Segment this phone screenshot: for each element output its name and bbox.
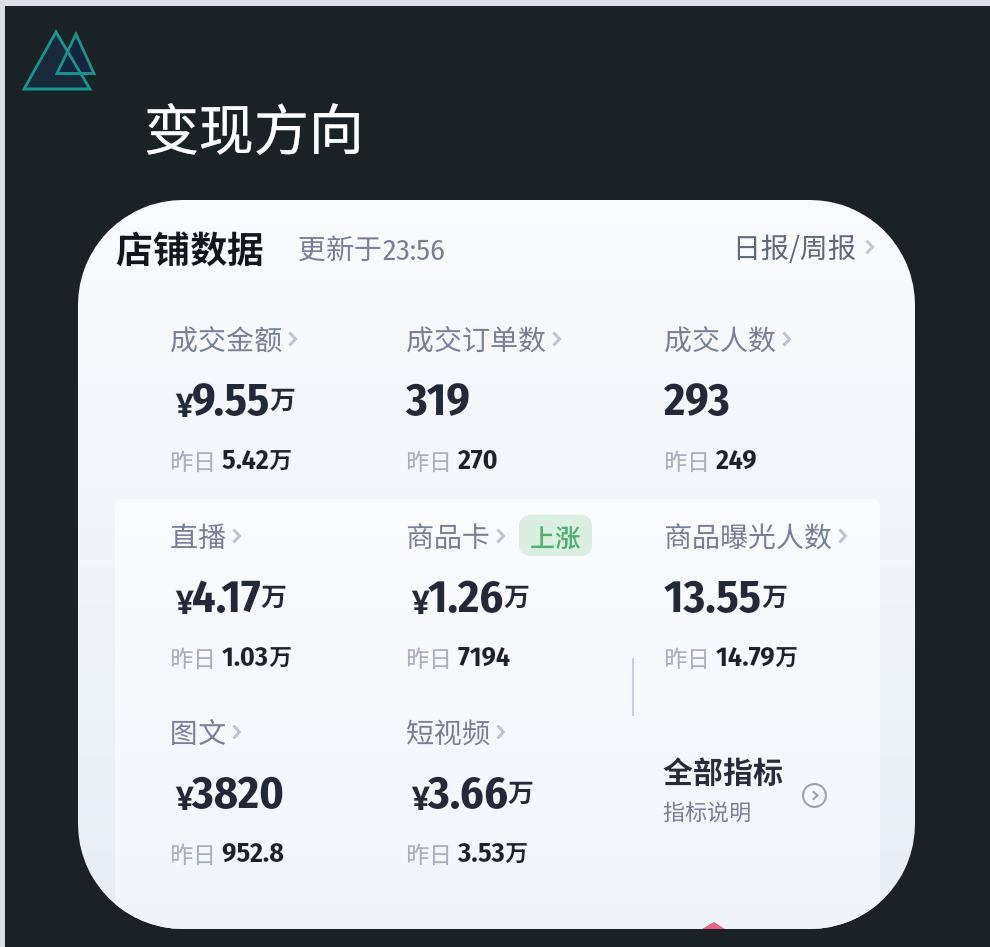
staticText: 短视频	[406, 711, 491, 752]
staticText: 直播	[170, 515, 227, 556]
button[interactable]: 全部指标	[663, 748, 783, 826]
staticText: 3820	[192, 765, 285, 820]
button[interactable]: 全部指标	[802, 783, 827, 808]
staticText: 指标说明	[663, 794, 752, 826]
staticText: 万	[505, 834, 528, 867]
staticText: 3.53	[458, 836, 505, 870]
staticText: 293	[664, 372, 730, 427]
staticText: 成交订单数	[406, 318, 547, 359]
staticText: 4.17	[192, 569, 261, 624]
staticText: 万	[775, 638, 798, 671]
staticText: 万	[504, 576, 531, 614]
staticText: 5.42	[222, 443, 269, 477]
staticText: 昨日	[406, 443, 458, 476]
staticText: 昨日	[170, 443, 222, 476]
button[interactable]: 上涨	[519, 515, 592, 556]
staticText: 14.79	[716, 640, 775, 674]
staticText: 成交人数	[664, 318, 777, 359]
staticText: 商品卡	[406, 515, 491, 556]
staticText: 全部指标	[663, 748, 783, 791]
staticText: 319	[406, 372, 471, 427]
staticText: ¥	[176, 385, 194, 426]
staticText: 249	[716, 443, 757, 477]
staticText: 270	[458, 443, 498, 477]
staticText: 23:56	[383, 232, 445, 268]
staticText: 952.8	[222, 836, 285, 870]
staticText: 商品曝光人数	[664, 515, 833, 556]
staticText: 日报/周报	[733, 226, 856, 267]
staticText: 上涨	[530, 518, 581, 554]
button[interactable]: 短视频	[406, 711, 505, 752]
staticText: 成交金额	[170, 318, 283, 359]
staticText: 万	[269, 441, 292, 474]
staticText: 万	[762, 576, 789, 614]
staticText: 昨日	[406, 640, 458, 673]
staticText: 万	[261, 576, 288, 614]
staticText: ¥	[412, 582, 430, 623]
staticText: 昨日	[170, 640, 222, 673]
staticText: 昨日	[170, 836, 222, 869]
button[interactable]: 成交金额	[170, 318, 297, 359]
staticText: 万	[269, 638, 292, 671]
staticText: 13.55	[664, 569, 762, 624]
staticText: ¥	[176, 582, 194, 623]
staticText: 变现方向	[144, 86, 365, 166]
staticText: 3.66	[428, 765, 508, 820]
staticText: 万	[270, 379, 297, 417]
staticText: 9.55	[192, 372, 270, 427]
button[interactable]: 日报/周报	[733, 226, 874, 267]
staticText: 1.26	[428, 569, 504, 624]
button[interactable]: 商品卡	[406, 515, 592, 556]
staticText: ¥	[412, 778, 430, 819]
staticText: ¥	[176, 778, 194, 819]
button[interactable]: 成交人数	[664, 318, 791, 359]
staticText: 昨日	[664, 443, 716, 476]
button[interactable]: 商品曝光人数	[664, 515, 847, 556]
staticText: 更新于	[298, 227, 383, 268]
staticText: 昨日	[406, 836, 458, 869]
button[interactable]: 图文	[170, 711, 241, 752]
staticText: 店铺数据	[116, 220, 264, 274]
staticText: 图文	[170, 711, 227, 752]
button[interactable]: 直播	[170, 515, 241, 556]
staticText: 1.03	[222, 640, 269, 674]
staticText: 昨日	[664, 640, 716, 673]
button[interactable]: 成交订单数	[406, 318, 561, 359]
staticText: 万	[508, 772, 535, 810]
staticText: 7194	[458, 640, 511, 674]
